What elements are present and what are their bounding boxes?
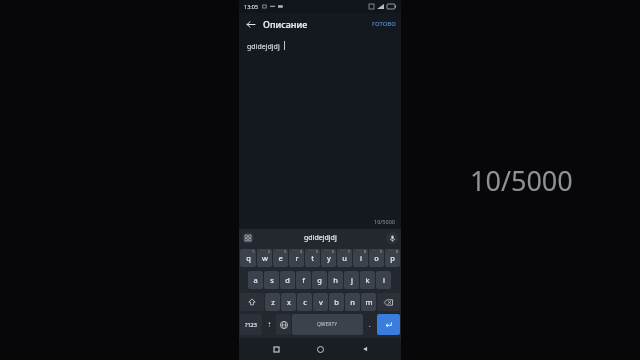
button[interactable]: Сменить язык	[276, 314, 291, 335]
button[interactable]: Назад	[357, 341, 373, 357]
button[interactable]: h	[328, 271, 343, 289]
staticText: 1	[252, 249, 255, 254]
staticText: 2	[268, 249, 271, 254]
button[interactable]: n	[345, 293, 360, 311]
staticText: f	[302, 275, 305, 285]
staticText: 7	[348, 249, 351, 254]
button[interactable]: Обзор	[268, 341, 284, 357]
staticText: 9	[380, 249, 383, 254]
staticText: ?123	[245, 321, 257, 328]
button[interactable]: p	[385, 249, 400, 267]
staticText: b	[334, 297, 339, 307]
button[interactable]: ГОТОВО	[367, 17, 401, 31]
staticText: gdidejdjdj	[247, 42, 280, 52]
staticText: h	[333, 275, 338, 285]
staticText: l	[383, 275, 385, 285]
button[interactable]: j	[344, 271, 359, 289]
button[interactable]: .	[364, 314, 376, 335]
staticText: x	[287, 297, 291, 307]
staticText: e	[278, 253, 283, 263]
staticText: y	[327, 253, 331, 263]
button[interactable]: v	[313, 293, 328, 311]
button[interactable]: Shift	[240, 293, 264, 311]
staticText: n	[350, 297, 355, 307]
staticText: w	[262, 253, 268, 263]
staticText: 10/5000	[374, 218, 395, 225]
button[interactable]: l	[376, 271, 391, 289]
staticText: 6	[332, 249, 335, 254]
button[interactable]: c	[297, 293, 312, 311]
button[interactable]: k	[360, 271, 375, 289]
staticText: k	[365, 275, 370, 285]
staticText: 3	[284, 249, 287, 254]
staticText: QWERTY	[317, 321, 338, 328]
staticText: t	[311, 253, 314, 263]
button[interactable]: ?123	[240, 314, 262, 335]
button[interactable]: Эмодзи	[263, 314, 275, 335]
button[interactable]: y	[321, 249, 336, 267]
staticText: 4	[300, 249, 303, 254]
staticText: v	[319, 297, 323, 307]
button[interactable]: a	[248, 271, 263, 289]
staticText: .	[369, 321, 371, 329]
button[interactable]: b	[329, 293, 344, 311]
button[interactable]: Ввод	[377, 314, 400, 335]
staticText: a	[253, 275, 258, 285]
button[interactable]: Главный экран	[312, 341, 328, 357]
button[interactable]: t	[305, 249, 320, 267]
staticText: ГОТОВО	[372, 20, 396, 28]
staticText: 13:05	[244, 3, 259, 10]
button[interactable]: Стикеры	[242, 232, 254, 244]
staticText: Описание	[263, 18, 308, 30]
staticText: i	[360, 253, 362, 263]
staticText: c	[303, 297, 307, 307]
button[interactable]: gdidejdjdj	[239, 229, 401, 247]
button[interactable]: e	[273, 249, 288, 267]
button[interactable]: x	[281, 293, 296, 311]
staticText: 8	[364, 249, 367, 254]
button[interactable]: o	[369, 249, 384, 267]
button[interactable]: z	[265, 293, 280, 311]
button[interactable]: i	[353, 249, 368, 267]
button[interactable]: r	[289, 249, 304, 267]
staticText: q	[246, 253, 251, 263]
staticText: j	[351, 275, 353, 285]
staticText: 10/5000	[470, 162, 573, 199]
button[interactable]: f	[296, 271, 311, 289]
staticText: o	[374, 253, 379, 263]
button[interactable]: w	[257, 249, 272, 267]
staticText: g	[317, 275, 322, 285]
staticText: m	[365, 297, 373, 307]
staticText: r	[295, 253, 299, 263]
button[interactable]: q	[240, 249, 256, 267]
button[interactable]: Голосовой ввод	[386, 232, 398, 244]
button[interactable]: d	[280, 271, 295, 289]
staticText: z	[271, 297, 275, 307]
button[interactable]: s	[264, 271, 279, 289]
button[interactable]: g	[312, 271, 327, 289]
button[interactable]: Удалить	[377, 293, 400, 311]
button[interactable]: QWERTY	[292, 314, 363, 335]
staticText: s	[270, 275, 274, 285]
staticText: gdidejdjdj	[304, 233, 337, 243]
staticText: d	[285, 275, 290, 285]
staticText: p	[390, 253, 395, 263]
staticText: 5	[316, 249, 319, 254]
button[interactable]: u	[337, 249, 352, 267]
button[interactable]: Назад	[242, 16, 258, 32]
button[interactable]: m	[361, 293, 376, 311]
staticText: u	[342, 253, 347, 263]
staticText: 0	[396, 249, 399, 254]
